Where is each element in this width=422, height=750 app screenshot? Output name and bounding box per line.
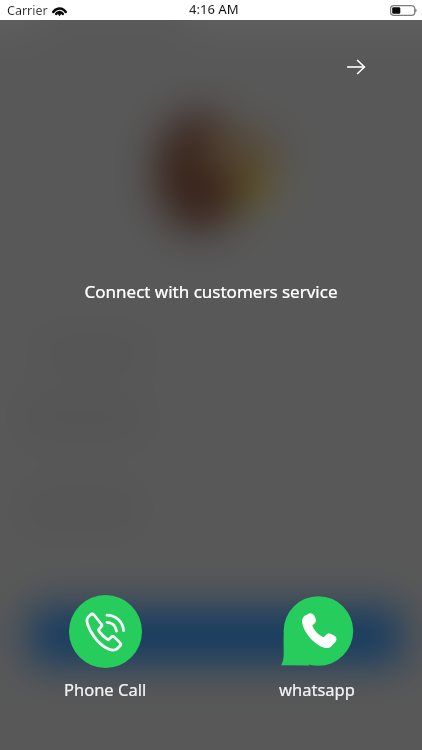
- staticText: Phone Call: [64, 678, 147, 700]
- button[interactable]: Continue: [332, 45, 376, 89]
- staticText: Carrier: [7, 2, 48, 19]
- button[interactable]: Phone Call: [56, 595, 155, 700]
- button[interactable]: whatsapp: [271, 595, 363, 700]
- staticText: 4:16 AM: [189, 0, 239, 18]
- staticText: whatsapp: [279, 678, 355, 700]
- staticText: Connect with customers service: [0, 280, 422, 303]
